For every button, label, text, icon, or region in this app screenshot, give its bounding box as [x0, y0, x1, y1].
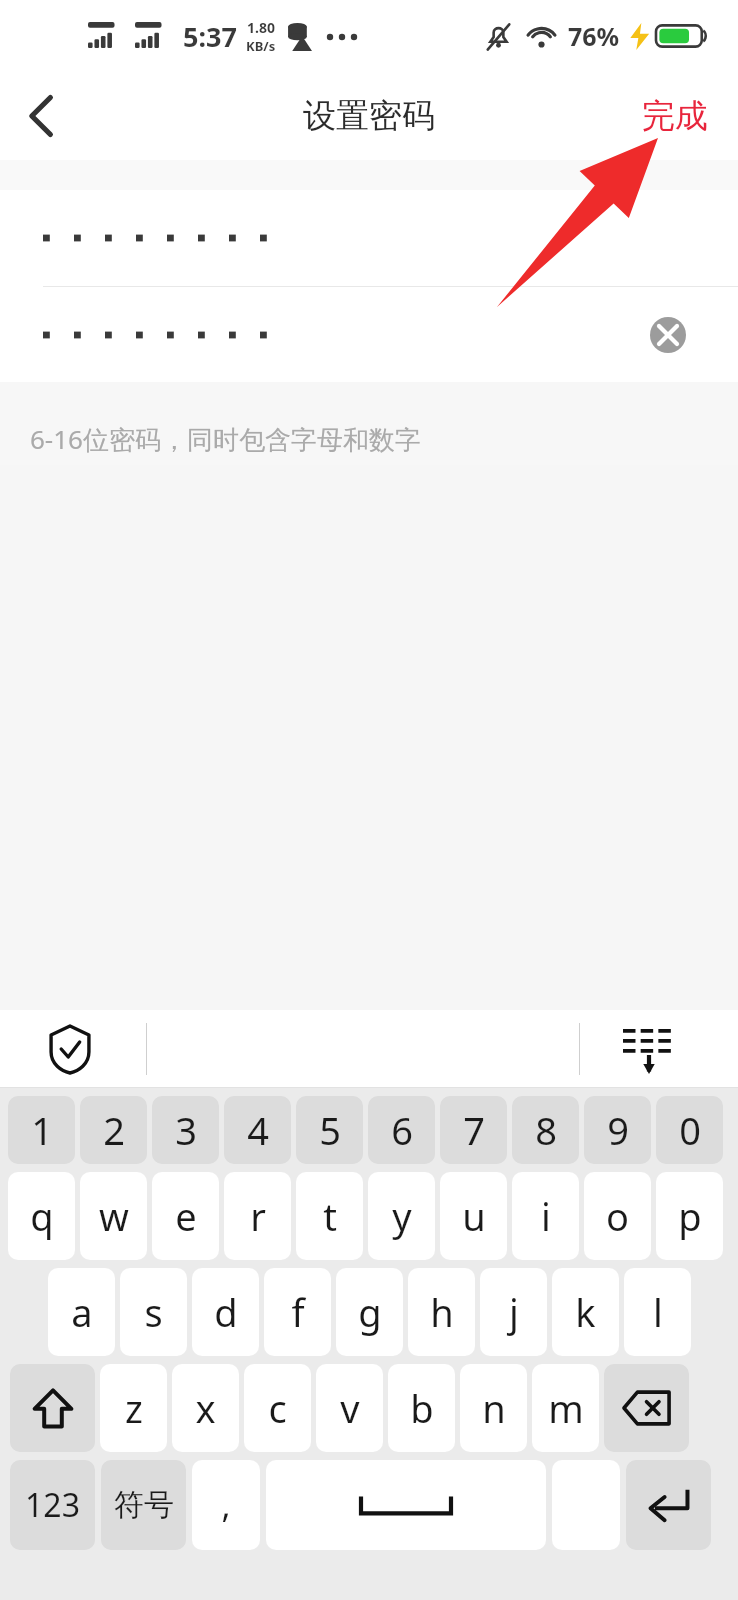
- staticText: t: [323, 1190, 337, 1242]
- staticText: 8: [535, 1104, 557, 1156]
- button[interactable]: f: [264, 1268, 331, 1356]
- staticText: a: [71, 1286, 93, 1338]
- button[interactable]: z: [100, 1364, 167, 1452]
- button[interactable]: p: [656, 1172, 723, 1260]
- staticText: i: [541, 1190, 551, 1242]
- button[interactable]: d: [192, 1268, 259, 1356]
- button[interactable]: o: [584, 1172, 651, 1260]
- staticText: x: [195, 1382, 216, 1434]
- button[interactable]: 0: [656, 1096, 723, 1164]
- staticText: k: [575, 1286, 596, 1338]
- button[interactable]: Hide keyboard: [618, 1018, 680, 1080]
- staticText: l: [653, 1286, 663, 1338]
- button[interactable]: 5: [296, 1096, 363, 1164]
- button[interactable]: 9: [584, 1096, 651, 1164]
- staticText: 123: [25, 1483, 80, 1527]
- button[interactable]: l: [624, 1268, 691, 1356]
- button[interactable]: Clear: [642, 309, 694, 361]
- staticText: ,: [221, 1482, 231, 1528]
- staticText: 7: [463, 1104, 485, 1156]
- staticText: s: [144, 1286, 163, 1338]
- button[interactable]: r: [224, 1172, 291, 1260]
- staticText: 5:37: [183, 18, 237, 55]
- button[interactable]: s: [120, 1268, 187, 1356]
- button[interactable]: Backspace: [604, 1364, 689, 1452]
- staticText: 6-16位密码，同时包含字母和数字: [30, 421, 421, 457]
- button[interactable]: Enter: [626, 1460, 711, 1550]
- staticText: 0: [679, 1104, 701, 1156]
- staticText: q: [30, 1190, 54, 1242]
- button[interactable]: m: [532, 1364, 599, 1452]
- staticText: 完成: [642, 95, 708, 137]
- button[interactable]: Back: [0, 74, 84, 158]
- staticText: z: [125, 1382, 143, 1434]
- staticText: w: [99, 1190, 129, 1242]
- button[interactable]: h: [408, 1268, 475, 1356]
- button[interactable]: t: [296, 1172, 363, 1260]
- staticText: 4: [247, 1104, 269, 1156]
- staticText: 符号: [114, 1486, 174, 1524]
- button[interactable]: Space: [266, 1460, 546, 1550]
- staticText: m: [548, 1382, 584, 1434]
- button[interactable]: w: [80, 1172, 147, 1260]
- staticText: d: [214, 1286, 238, 1338]
- button[interactable]: q: [8, 1172, 75, 1260]
- staticText: u: [462, 1190, 486, 1242]
- staticText: c: [268, 1382, 287, 1434]
- staticText: 6: [391, 1104, 413, 1156]
- staticText: h: [430, 1286, 454, 1338]
- staticText: p: [678, 1190, 702, 1242]
- staticText: n: [482, 1382, 506, 1434]
- button[interactable]: Shift: [10, 1364, 95, 1452]
- button[interactable]: g: [336, 1268, 403, 1356]
- staticText: 2: [103, 1104, 125, 1156]
- staticText: 1: [31, 1104, 53, 1156]
- staticText: y: [392, 1190, 412, 1242]
- staticText: 5: [319, 1104, 341, 1156]
- staticText: o: [606, 1190, 629, 1242]
- staticText: e: [175, 1190, 197, 1242]
- button[interactable]: 2: [80, 1096, 147, 1164]
- button[interactable]: 符号: [101, 1460, 186, 1550]
- button[interactable]: 7: [440, 1096, 507, 1164]
- button[interactable]: 1: [8, 1096, 75, 1164]
- staticText: 设置密码: [303, 95, 435, 137]
- staticText: g: [358, 1286, 382, 1338]
- button[interactable]: [0, 190, 738, 286]
- button[interactable]: i: [512, 1172, 579, 1260]
- staticText: r: [250, 1190, 266, 1242]
- button[interactable]: ,: [192, 1460, 260, 1550]
- button[interactable]: Secure input: [40, 1019, 100, 1079]
- staticText: KB/s: [246, 37, 276, 55]
- button[interactable]: 6: [368, 1096, 435, 1164]
- staticText: j: [509, 1286, 519, 1338]
- button[interactable]: 4: [224, 1096, 291, 1164]
- staticText: f: [291, 1286, 305, 1338]
- button[interactable]: 8: [512, 1096, 579, 1164]
- staticText: 76%: [568, 19, 620, 53]
- button[interactable]: 完成: [612, 81, 738, 151]
- button[interactable]: b: [388, 1364, 455, 1452]
- staticText: 3: [175, 1104, 197, 1156]
- button[interactable]: u: [440, 1172, 507, 1260]
- button[interactable]: k: [552, 1268, 619, 1356]
- button[interactable]: n: [460, 1364, 527, 1452]
- button[interactable]: y: [368, 1172, 435, 1260]
- staticText: v: [340, 1382, 360, 1434]
- button[interactable]: x: [172, 1364, 239, 1452]
- staticText: 1.80: [247, 18, 275, 37]
- button[interactable]: j: [480, 1268, 547, 1356]
- button[interactable]: Clear: [0, 287, 738, 382]
- button[interactable]: c: [244, 1364, 311, 1452]
- button[interactable]: 3: [152, 1096, 219, 1164]
- button[interactable]: a: [48, 1268, 115, 1356]
- button[interactable]: 123: [10, 1460, 95, 1550]
- button[interactable]: e: [152, 1172, 219, 1260]
- button[interactable]: v: [316, 1364, 383, 1452]
- staticText: 9: [607, 1104, 629, 1156]
- staticText: b: [410, 1382, 434, 1434]
